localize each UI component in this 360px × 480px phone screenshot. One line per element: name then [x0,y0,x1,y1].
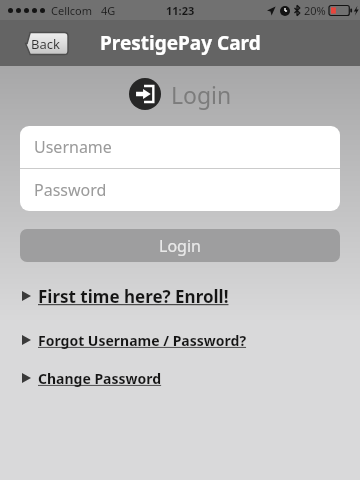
staticText: Username [34,136,112,158]
staticText: PrestigePay Card [100,30,261,56]
staticText: Login [159,235,201,257]
button[interactable]: Change Password [0,366,360,390]
staticText: Cellcom [51,3,93,18]
button[interactable]: Login [20,229,340,262]
staticText: First time here? Enroll! [38,285,229,308]
other: Login [129,78,161,110]
button[interactable]: Password [20,169,340,211]
staticText: 20% [304,3,326,18]
button[interactable]: Forgot Username / Password? [0,328,360,352]
staticText: Forgot Username / Password? [38,331,247,350]
staticText: Login [171,79,232,110]
staticText: Back [31,35,60,53]
staticText: 11:23 [166,3,195,18]
button[interactable]: Username [20,126,340,168]
button[interactable]: Back [14,29,68,58]
staticText: 4G [101,3,116,18]
staticText: Change Password [38,369,162,388]
staticText: Password [34,179,107,201]
button[interactable]: First time here? Enroll! [0,284,360,308]
